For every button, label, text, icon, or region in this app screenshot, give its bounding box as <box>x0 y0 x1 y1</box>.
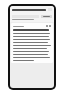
button[interactable] <box>12 9 46 11</box>
button[interactable] <box>11 23 53 63</box>
button[interactable] <box>41 15 52 18</box>
